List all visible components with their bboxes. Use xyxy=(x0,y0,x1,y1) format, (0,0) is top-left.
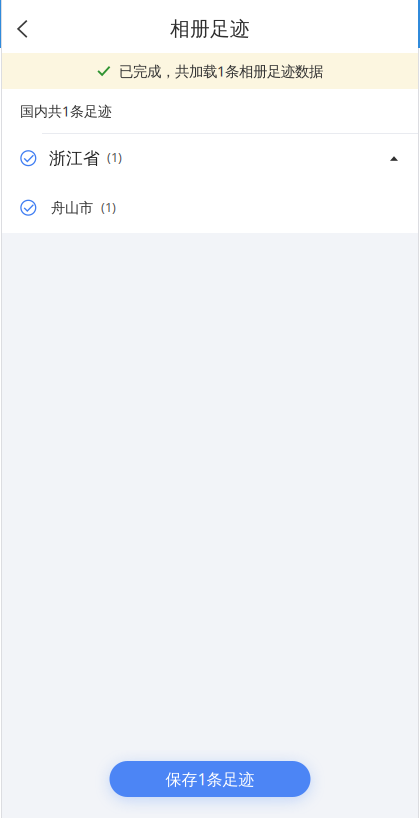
button[interactable]: 浙江省 xyxy=(0,134,420,183)
staticText: 相册足迹 xyxy=(170,17,250,41)
button[interactable]: Back xyxy=(0,0,52,53)
staticText: 已完成，共加载1条相册足迹数据 xyxy=(119,61,323,81)
staticText: 浙江省 xyxy=(49,148,100,169)
staticText: 舟山市 xyxy=(51,199,93,217)
staticText: (1) xyxy=(107,148,122,166)
staticText: 保存1条足迹 xyxy=(165,768,254,790)
button[interactable]: 舟山市 xyxy=(0,183,420,233)
staticText: (1) xyxy=(101,198,116,216)
staticText: 国内共1条足迹 xyxy=(20,101,112,121)
button[interactable]: 保存1条足迹 xyxy=(109,761,310,797)
